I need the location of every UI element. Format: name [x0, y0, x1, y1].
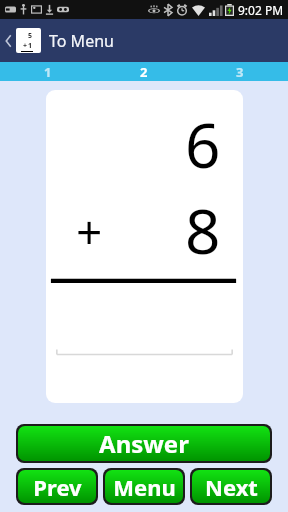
staticText: 5: [28, 31, 33, 41]
staticText: +: [76, 200, 103, 263]
button[interactable]: Prev: [18, 470, 96, 503]
button[interactable]: 2: [96, 62, 192, 81]
staticText: Prev: [33, 472, 82, 502]
button[interactable]: 5: [0, 19, 288, 62]
staticText: 8: [185, 188, 221, 272]
button[interactable]: Next: [192, 470, 270, 503]
staticText: Menu: [113, 472, 176, 502]
staticText: +: [23, 41, 28, 51]
button[interactable]: 6: [46, 90, 243, 403]
button[interactable]: 1: [0, 62, 96, 81]
staticText: 1: [44, 63, 52, 81]
button[interactable]: 3: [192, 62, 288, 81]
staticText: 6: [185, 102, 221, 186]
staticText: Next: [205, 472, 258, 502]
staticText: To Menu: [49, 30, 114, 52]
staticText: Answer: [99, 427, 189, 460]
button[interactable]: Answer: [18, 426, 270, 461]
staticText: 9:02 PM: [238, 2, 284, 18]
staticText: 3: [236, 63, 244, 81]
staticText: 1: [28, 41, 33, 51]
button[interactable]: Menu: [105, 470, 183, 503]
staticText: 2: [140, 63, 148, 81]
